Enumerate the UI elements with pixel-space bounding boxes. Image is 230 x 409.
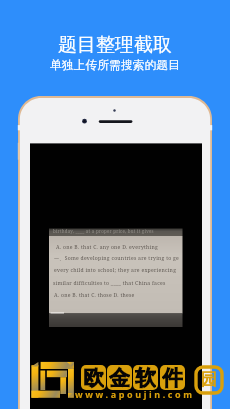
staticText: A. one B. that C. any one D. everything <box>56 244 158 251</box>
staticText: 欧 <box>83 365 104 390</box>
staticText: 单独上传所需搜索的题目 <box>50 58 180 73</box>
staticText: 软 <box>135 365 156 390</box>
staticText: every child into school; they are experi… <box>54 267 177 274</box>
staticText: 题目整理截取 <box>58 33 172 57</box>
staticText: A. one B. that C. those D. these <box>54 292 135 299</box>
staticText: 园 <box>201 370 217 390</box>
staticText: 件 <box>162 365 183 390</box>
staticText: www.apoujin.com <box>75 388 195 400</box>
staticText: similar difficulties to ____ that China … <box>53 280 166 287</box>
staticText: birthday, ____ at a proper price, but it… <box>53 228 154 234</box>
staticText: 一、Some developing countries are trying t… <box>54 255 179 262</box>
staticText: 金 <box>109 365 130 390</box>
